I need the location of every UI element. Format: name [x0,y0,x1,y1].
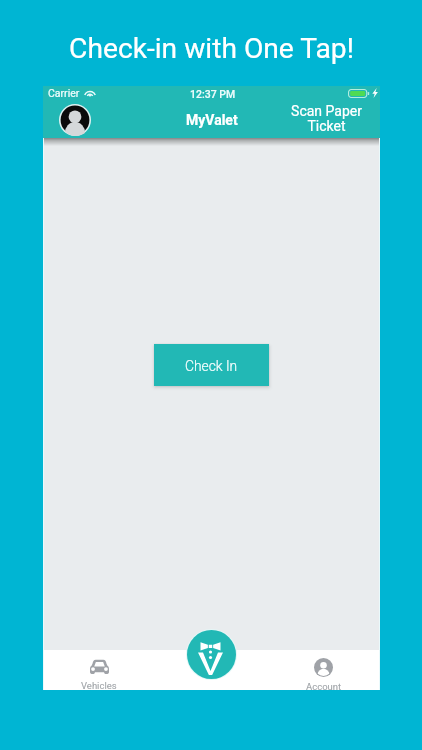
staticText: Scan Paper Ticket [291,103,362,135]
button[interactable]: Account [287,650,360,690]
button[interactable]: Scan Paper Ticket [276,100,376,138]
staticText: Carrier [48,87,80,99]
button[interactable]: Check In [154,344,269,386]
button[interactable]: Profile [59,104,91,136]
button[interactable]: Vehicles [63,650,135,690]
button[interactable]: Valet check in [187,630,236,679]
staticText: Check-in with One Tap! [69,32,354,65]
staticText: Account [306,681,342,690]
staticText: 12:37 PM [190,88,236,100]
staticText: Check In [185,358,238,374]
staticText: Vehicles [81,680,117,690]
staticText: MyValet [186,112,238,128]
